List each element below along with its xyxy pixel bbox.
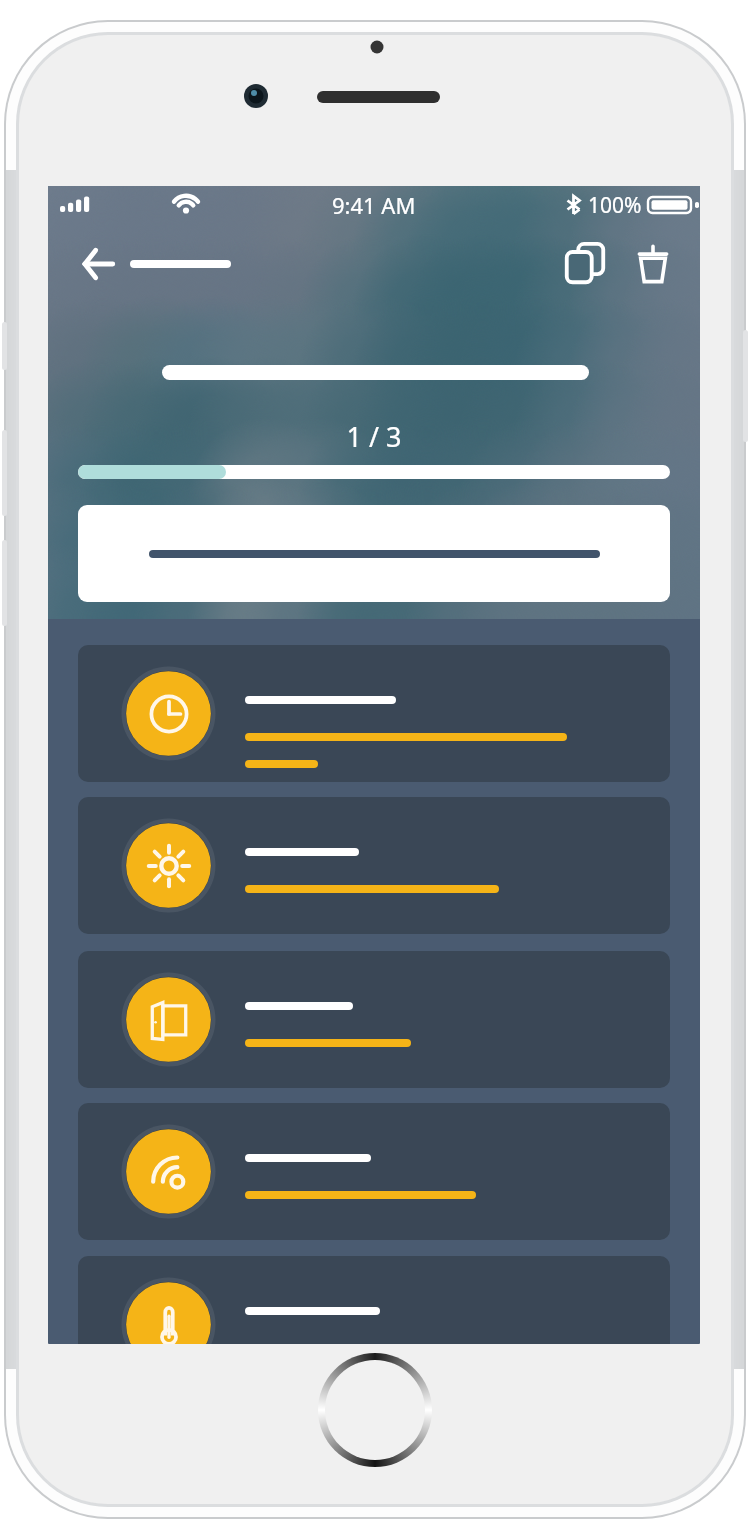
- staticText: 100%: [588, 191, 642, 220]
- button[interactable]: [78, 951, 670, 1088]
- button[interactable]: [78, 645, 670, 782]
- button[interactable]: Back: [73, 236, 241, 292]
- button[interactable]: [78, 1256, 670, 1344]
- button[interactable]: [78, 505, 670, 602]
- button[interactable]: Copy: [556, 235, 614, 293]
- staticText: 9:41 AM: [332, 190, 416, 220]
- staticText: 1 / 3: [48, 418, 700, 455]
- button[interactable]: [78, 1103, 670, 1240]
- button[interactable]: [78, 797, 670, 934]
- button[interactable]: Delete: [624, 235, 682, 293]
